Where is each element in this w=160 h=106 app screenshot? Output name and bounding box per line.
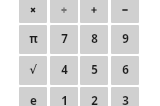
button[interactable]: 5 bbox=[80, 56, 108, 85]
staticText: π bbox=[29, 31, 38, 47]
staticText: 3 bbox=[122, 93, 129, 106]
button[interactable]: 1 bbox=[50, 87, 78, 106]
button[interactable]: 4 bbox=[50, 56, 78, 85]
staticText: 4 bbox=[61, 62, 68, 78]
button[interactable]: Minus bbox=[111, 0, 139, 23]
button[interactable]: Plus bbox=[80, 0, 108, 23]
staticText: e bbox=[30, 93, 37, 106]
staticText: 2 bbox=[91, 93, 98, 106]
button[interactable]: 6 bbox=[111, 56, 139, 85]
button[interactable]: 3 bbox=[111, 87, 139, 106]
button[interactable]: √ bbox=[19, 56, 47, 85]
button[interactable]: 7 bbox=[50, 25, 78, 54]
button[interactable]: Multiply bbox=[19, 0, 47, 23]
button[interactable]: Divide bbox=[50, 0, 78, 23]
button[interactable]: 8 bbox=[80, 25, 108, 54]
button[interactable]: 2 bbox=[80, 87, 108, 106]
staticText: 5 bbox=[91, 62, 98, 78]
button[interactable]: π bbox=[19, 25, 47, 54]
staticText: √ bbox=[29, 63, 37, 76]
staticText: 6 bbox=[122, 62, 129, 78]
button[interactable]: 9 bbox=[111, 25, 139, 54]
staticText: 9 bbox=[122, 31, 129, 47]
staticText: 7 bbox=[61, 31, 68, 47]
staticText: 1 bbox=[61, 93, 68, 106]
staticText: 8 bbox=[91, 31, 98, 47]
button[interactable]: e bbox=[19, 87, 47, 106]
